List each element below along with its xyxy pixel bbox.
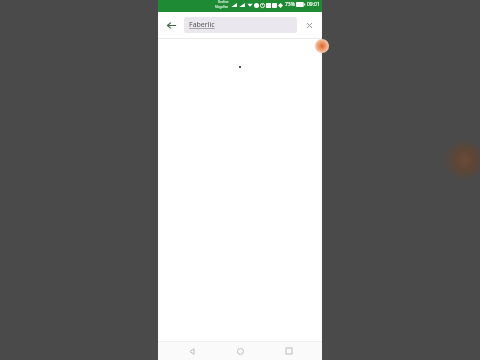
button[interactable]: Clear search — [300, 16, 318, 34]
button[interactable]: Faberlic — [184, 17, 297, 33]
button[interactable]: Home — [225, 342, 255, 360]
staticText: Beeline — [218, 0, 229, 4]
button[interactable]: Action — [315, 39, 329, 53]
staticText: MegaFon — [215, 5, 229, 9]
staticText: Faberlic — [189, 20, 215, 30]
staticText: 09:01 — [307, 1, 320, 8]
button[interactable]: Back — [177, 342, 207, 360]
button[interactable]: Recent apps — [274, 342, 304, 360]
staticText: 73% — [285, 1, 295, 8]
button[interactable]: Back — [162, 16, 180, 34]
